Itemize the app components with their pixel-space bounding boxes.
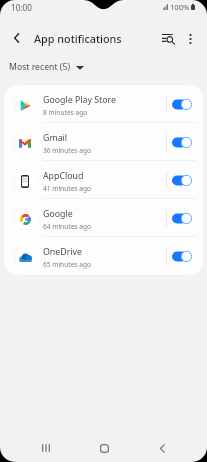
button[interactable]: Recent apps [17, 436, 75, 460]
staticText: 65 minutes ago [43, 260, 91, 269]
button[interactable]: Gmail [4, 123, 203, 161]
button[interactable]: Notification toggle, on [172, 213, 192, 224]
staticText: 10:00 [11, 2, 32, 13]
button[interactable]: Back [0, 21, 34, 55]
staticText: 100% [170, 2, 190, 12]
staticText: AppCloud [43, 170, 84, 182]
staticText: 64 minutes ago [43, 222, 91, 231]
staticText: 8 minutes ago [43, 108, 88, 117]
staticText: 36 minutes ago [43, 146, 91, 155]
staticText: 41 minutes ago [43, 184, 91, 193]
staticText: Google Play Store [43, 94, 117, 106]
button[interactable]: Google Play Store [4, 85, 203, 123]
staticText: Google [43, 208, 73, 220]
button[interactable]: Notification toggle, on [172, 99, 192, 110]
staticText: App notifications [34, 31, 122, 46]
button[interactable]: Back [133, 436, 191, 460]
button[interactable]: OneDrive [4, 237, 203, 275]
button[interactable]: Notification toggle, on [172, 175, 192, 186]
button[interactable]: Search [155, 25, 181, 51]
button[interactable]: Most recent (5) [9, 55, 207, 79]
staticText: OneDrive [43, 246, 83, 258]
button[interactable]: Home [75, 436, 133, 460]
button[interactable]: Notification toggle, on [172, 137, 192, 148]
button[interactable]: Notification toggle, on [172, 251, 192, 262]
button[interactable]: Google [4, 199, 203, 237]
staticText: Gmail [43, 132, 68, 144]
button[interactable]: AppCloud [4, 161, 203, 199]
button[interactable]: More options [181, 29, 200, 48]
staticText: Most recent (5) [9, 61, 71, 73]
